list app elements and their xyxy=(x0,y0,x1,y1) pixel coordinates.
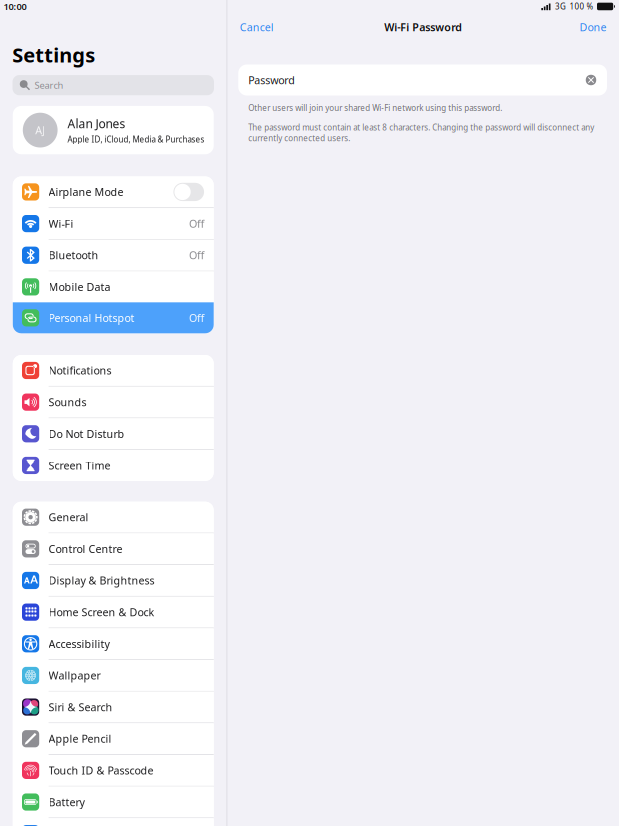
button[interactable]: Sounds xyxy=(13,387,214,418)
button[interactable]: Screen Time xyxy=(13,450,214,481)
staticText: Other users will join your shared Wi-Fi … xyxy=(248,102,502,113)
staticText: Accessibility xyxy=(49,637,110,651)
staticText: Wi-Fi Password xyxy=(384,20,462,34)
button[interactable]: Personal Hotspot xyxy=(13,302,214,333)
staticText: Notifications xyxy=(49,363,112,378)
staticText: 100 % xyxy=(569,1,593,12)
staticText: Wallpaper xyxy=(49,668,101,683)
staticText: Apple ID, iCloud, Media & Purchases xyxy=(67,134,204,145)
staticText: Screen Time xyxy=(49,458,111,473)
button[interactable]: Touch ID & Passcode xyxy=(13,755,214,786)
staticText: General xyxy=(49,510,89,524)
button[interactable]: Home Screen & Dock xyxy=(13,597,214,628)
staticText: Settings xyxy=(12,41,95,68)
staticText: Touch ID & Passcode xyxy=(49,763,154,777)
staticText: Display & Brightness xyxy=(49,573,155,588)
staticText: Cancel xyxy=(240,20,274,34)
staticText: Siri & Search xyxy=(49,700,113,714)
staticText: Personal Hotspot xyxy=(49,311,135,325)
button[interactable]: Accessibility xyxy=(13,628,214,659)
staticText: Wi-Fi xyxy=(49,216,74,231)
staticText: Alan Jones xyxy=(67,116,125,131)
staticText: Airplane Mode xyxy=(49,185,124,199)
staticText: Mobile Data xyxy=(49,280,111,294)
staticText: Off xyxy=(189,248,204,262)
button[interactable]: Mobile Data xyxy=(13,271,214,302)
staticText: Off xyxy=(189,311,204,325)
staticText: Off xyxy=(189,216,204,231)
button[interactable]: Notifications xyxy=(13,355,214,386)
button[interactable]: Airplane Mode xyxy=(13,176,214,207)
button[interactable]: Wallpaper xyxy=(13,660,214,691)
button[interactable]: AJ xyxy=(13,106,214,154)
staticText: Done xyxy=(579,20,606,34)
button[interactable]: Battery xyxy=(13,787,214,817)
staticText: Password xyxy=(248,73,295,87)
button[interactable]: Control Centre xyxy=(13,533,214,564)
button[interactable]: Wi-Fi xyxy=(13,208,214,239)
button[interactable]: Bluetooth xyxy=(13,240,214,271)
staticText: Battery xyxy=(49,795,85,809)
staticText: Search xyxy=(34,79,63,91)
staticText: Sounds xyxy=(49,395,87,409)
staticText: Home Screen & Dock xyxy=(49,605,155,619)
staticText: AJ xyxy=(35,123,45,137)
staticText: 10:00 xyxy=(3,0,26,13)
staticText: Apple Pencil xyxy=(49,732,112,746)
button[interactable]: General xyxy=(13,502,214,533)
button[interactable]: Apple Pencil xyxy=(13,723,214,754)
button[interactable]: Display & Brightness xyxy=(13,565,214,596)
button[interactable]: Clear password xyxy=(583,72,599,88)
staticText: Control Centre xyxy=(49,542,123,556)
staticText: The password must contain at least 8 cha… xyxy=(248,122,594,143)
staticText: Do Not Disturb xyxy=(49,427,125,441)
button[interactable]: Done xyxy=(579,15,606,39)
button[interactable]: Siri & Search xyxy=(13,692,214,722)
button[interactable]: Cancel xyxy=(240,15,274,39)
button[interactable]: Privacy xyxy=(13,818,214,826)
button[interactable]: Do Not Disturb xyxy=(13,418,214,449)
staticText: Bluetooth xyxy=(49,248,99,262)
staticText: 3G xyxy=(555,1,566,12)
